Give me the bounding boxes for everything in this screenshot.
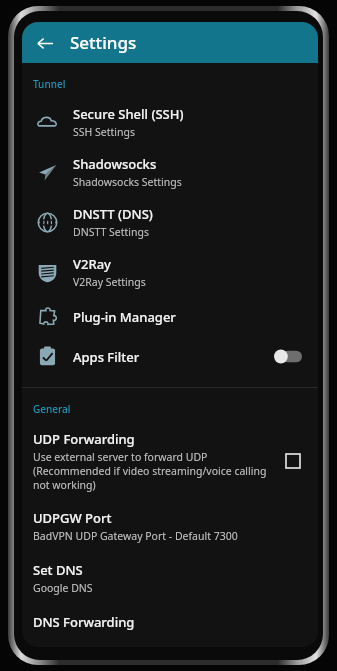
staticText: Tunnel — [33, 77, 66, 91]
staticText: V2Ray Settings — [73, 275, 146, 289]
staticText: UDPGW Port — [33, 509, 112, 527]
staticText: Settings — [70, 31, 137, 54]
button[interactable]: DNSTT (DNS) — [22, 197, 318, 247]
button[interactable]: Shadowsocks — [22, 147, 318, 197]
staticText: General — [33, 402, 71, 416]
staticText: DNSTT Settings — [73, 225, 149, 239]
staticText: Set DNS — [33, 561, 83, 579]
button[interactable]: Secure Shell (SSH) — [22, 97, 318, 147]
button[interactable]: DNS Forwarding — [22, 604, 318, 640]
staticText: Plug-in Manager — [73, 308, 176, 326]
button[interactable]: UDPGW Port — [22, 500, 318, 552]
button[interactable]: Apps Filter — [22, 336, 318, 377]
staticText: Shadowsocks — [73, 155, 157, 173]
staticText: Apps Filter — [73, 348, 273, 366]
button[interactable]: V2Ray — [22, 247, 318, 297]
staticText: Google DNS — [33, 581, 93, 595]
staticText: SSH Settings — [73, 125, 135, 139]
button[interactable]: UDP Forwarding — [22, 422, 318, 500]
staticText: Use external server to forward UDP (Reco… — [33, 450, 267, 492]
staticText: V2Ray — [73, 255, 111, 273]
staticText: BadVPN UDP Gateway Port - Default 7300 — [33, 529, 238, 543]
staticText: DNS Forwarding — [33, 613, 135, 631]
button[interactable]: Back — [28, 26, 62, 60]
staticText: UDP Forwarding — [33, 430, 135, 448]
staticText: DNSTT (DNS) — [73, 205, 153, 223]
staticText: Secure Shell (SSH) — [73, 105, 184, 123]
button[interactable]: Plug-in Manager — [22, 297, 318, 336]
button[interactable]: Set DNS — [22, 552, 318, 604]
staticText: Shadowsocks Settings — [73, 175, 182, 189]
